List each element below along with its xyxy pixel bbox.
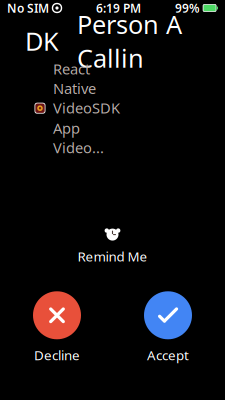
staticText: Decline (34, 346, 80, 364)
staticText: 99% (175, 0, 200, 16)
button[interactable]: Accept (123, 291, 213, 364)
staticText: App Video... (53, 118, 104, 157)
button[interactable]: Remind Me (69, 227, 155, 265)
staticText: React Native VideoSDK (53, 59, 120, 117)
button[interactable]: Decline (12, 291, 102, 364)
staticText: Accept (147, 346, 189, 364)
staticText: DK (25, 24, 59, 58)
staticText: Remind Me (77, 248, 147, 265)
staticText: 6:19 PM (96, 0, 141, 16)
staticText: No SIM (7, 0, 49, 16)
staticText: Person A Callin (77, 7, 182, 75)
